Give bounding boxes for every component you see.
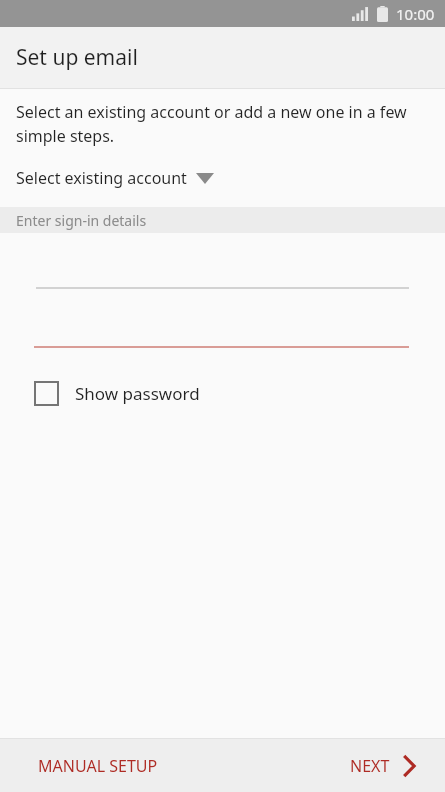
staticText: Set up email: [16, 43, 138, 72]
button[interactable]: Select existing account: [0, 163, 445, 193]
staticText: Select existing account: [16, 167, 187, 189]
staticText: NEXT: [350, 755, 390, 777]
button[interactable]: [0, 346, 445, 348]
other: Next: [404, 757, 415, 775]
button[interactable]: Show password: [0, 377, 216, 410]
staticText: Enter sign-in details: [16, 211, 147, 230]
button[interactable]: MANUAL SETUP: [0, 739, 196, 792]
button[interactable]: [0, 287, 445, 289]
button[interactable]: NEXT: [330, 739, 445, 792]
staticText: 10:00: [396, 4, 435, 24]
staticText: MANUAL SETUP: [38, 755, 158, 777]
staticText: Show password: [75, 382, 200, 405]
staticText: Select an existing account or add a new …: [16, 101, 425, 147]
